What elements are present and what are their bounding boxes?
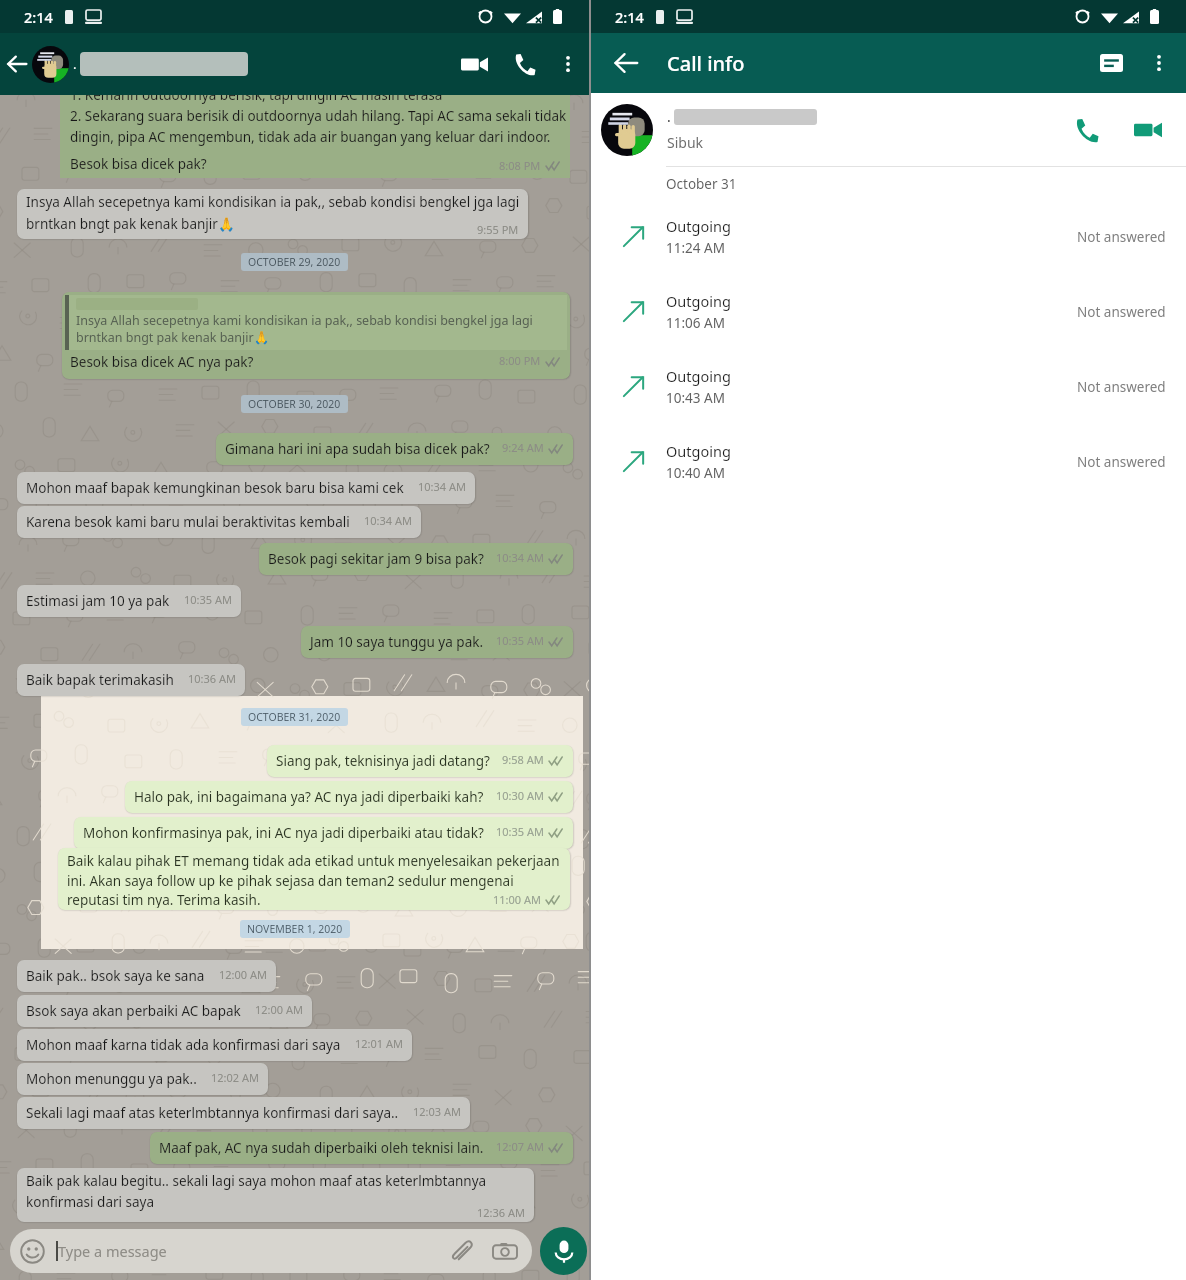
staticText: 12:00 AM [219,967,267,982]
button[interactable]: Gimana hari ini apa sudah bisa dicek pak… [216,433,573,465]
staticText: 11:06 AM [666,314,725,332]
button[interactable]: Outgoing [591,199,1186,274]
staticText: 10:36 AM [188,671,236,686]
button[interactable]: Estimasi jam 10 ya pak [17,585,241,617]
button[interactable]: Call [1064,108,1108,152]
staticText: October 31 [666,175,737,193]
button[interactable]: . [591,93,1186,166]
button[interactable]: Mohon konfirmasinya pak, ini AC nya jadi… [74,817,573,849]
button[interactable]: Halo pak, ini bagaimana ya? AC nya jadi … [125,781,573,813]
staticText: Not answered [1077,378,1166,396]
staticText: 10:34 AM [496,550,544,565]
staticText: 11:24 AM [666,239,725,257]
staticText: Mohon menunggu ya pak.. [26,1070,197,1088]
button[interactable]: Karena besok kami baru mulai beraktivita… [17,506,421,538]
button[interactable]: Camera [491,1238,518,1265]
button[interactable]: Voice message [540,1227,587,1275]
staticText: Besok pagi sekitar jam 9 bisa pak? [268,550,484,568]
staticText: 12:07 AM [496,1139,544,1154]
staticText: 12:00 AM [255,1002,303,1017]
button[interactable]: Mohon maaf bapak kemungkinan besok baru … [17,472,475,504]
staticText: 12:01 AM [355,1036,403,1051]
staticText: Gimana hari ini apa sudah bisa dicek pak… [225,440,490,458]
staticText: 12:02 AM [211,1070,259,1085]
button[interactable]: Insya Allah secepetnya kami kondisikan i… [62,292,570,379]
button[interactable]: Bsok saya akan perbaiki AC bapak [17,995,312,1027]
staticText: Siang pak, teknisinya jadi datang? [276,752,490,770]
button[interactable]: Back [605,42,647,84]
staticText: Outgoing [666,291,731,311]
staticText: Baik bapak terimakasih [26,671,174,689]
staticText: 9:58 AM [502,752,544,767]
button[interactable]: Baik bapak terimakasih [17,664,245,696]
staticText: Type a message [58,1241,167,1261]
button[interactable]: More options [1142,46,1176,80]
staticText: Besok bisa dicek pak? [70,155,207,173]
staticText: Insya Allah secepetnya kami kondisikan i… [26,193,519,233]
staticText: Bsok saya akan perbaiki AC bapak [26,1002,241,1020]
staticText: 12:03 AM [413,1104,461,1119]
staticText: 10:35 AM [184,592,232,607]
button[interactable]: Sekali lagi maaf atas keterlmbtannya kon… [17,1097,470,1129]
staticText: 10:35 AM [496,824,544,839]
staticText: . [73,55,77,73]
staticText: OCTOBER 31, 2020 [248,710,341,724]
staticText: 10:34 AM [418,479,466,494]
staticText: Not answered [1077,228,1166,246]
button[interactable]: Mohon menunggu ya pak.. [17,1063,268,1095]
staticText: Outgoing [666,216,731,236]
staticText: 12:36 AM [477,1205,525,1220]
staticText: Mohon maaf karna tidak ada konfirmasi da… [26,1036,341,1054]
staticText: Mohon maaf bapak kemungkinan besok baru … [26,479,404,497]
button[interactable]: Back [2,49,32,79]
button[interactable]: 1. Kemarin outdoornya berisik, tapi ding… [60,95,570,178]
staticText: OCTOBER 30, 2020 [248,397,341,411]
button[interactable]: Type a message [10,1229,532,1273]
button[interactable]: Call [503,43,545,85]
button[interactable]: Insya Allah secepetnya kami kondisikan i… [17,189,528,239]
staticText: Halo pak, ini bagaimana ya? AC nya jadi … [134,788,484,806]
button[interactable]: Outgoing [591,349,1186,424]
button[interactable]: Besok pagi sekitar jam 9 bisa pak? [259,543,573,575]
button[interactable]: Outgoing [591,424,1186,499]
staticText: 9:24 AM [502,440,544,455]
staticText: Sekali lagi maaf atas keterlmbtannya kon… [26,1104,399,1122]
staticText: Karena besok kami baru mulai beraktivita… [26,513,350,531]
button[interactable]: . [73,33,451,95]
button[interactable]: Outgoing [591,274,1186,349]
button[interactable]: More options [551,47,585,81]
staticText: 2:14 [24,7,53,27]
staticText: Mohon konfirmasinya pak, ini AC nya jadi… [83,824,484,842]
staticText: Outgoing [666,366,731,386]
staticText: Not answered [1077,303,1166,321]
staticText: OCTOBER 29, 2020 [248,255,341,269]
button[interactable]: Attach [448,1238,475,1265]
staticText: Baik pak.. bsok saya ke sana [26,967,205,985]
staticText: 10:30 AM [496,788,544,803]
button[interactable]: Baik kalau pihak ET memang tidak ada eti… [58,848,570,910]
staticText: Jam 10 saya tunggu ya pak. [310,633,484,651]
staticText: Outgoing [666,441,731,461]
button[interactable]: Video call [451,41,497,87]
staticText: 10:34 AM [364,513,412,528]
staticText: Call info [667,50,745,77]
staticText: 1. Kemarin outdoornya berisik, tapi ding… [70,86,567,146]
button[interactable]: Mohon maaf karna tidak ada konfirmasi da… [17,1029,412,1061]
staticText: Baik kalau pihak ET memang tidak ada eti… [67,852,560,908]
staticText: NOVEMBER 1, 2020 [247,922,343,936]
button[interactable]: Jam 10 saya tunggu ya pak. [301,626,573,658]
staticText: 10:35 AM [496,633,544,648]
staticText: 2:14 [615,7,644,27]
button[interactable]: Video call [1126,108,1170,152]
staticText: Baik pak kalau begitu.. sekali lagi saya… [26,1172,487,1211]
button[interactable]: Baik pak kalau begitu.. sekali lagi saya… [17,1168,534,1222]
button[interactable]: Message [1090,42,1132,84]
staticText: 10:40 AM [666,464,725,482]
button[interactable]: Maaf pak, AC nya sudah diperbaiki oleh t… [150,1132,573,1164]
button[interactable]: Siang pak, teknisinya jadi datang? [267,745,573,777]
staticText: 9:55 PM [477,222,519,237]
staticText: Maaf pak, AC nya sudah diperbaiki oleh t… [159,1139,484,1157]
staticText: Not answered [1077,453,1166,471]
staticText: . [667,107,671,126]
button[interactable]: Baik pak.. bsok saya ke sana [17,960,276,992]
